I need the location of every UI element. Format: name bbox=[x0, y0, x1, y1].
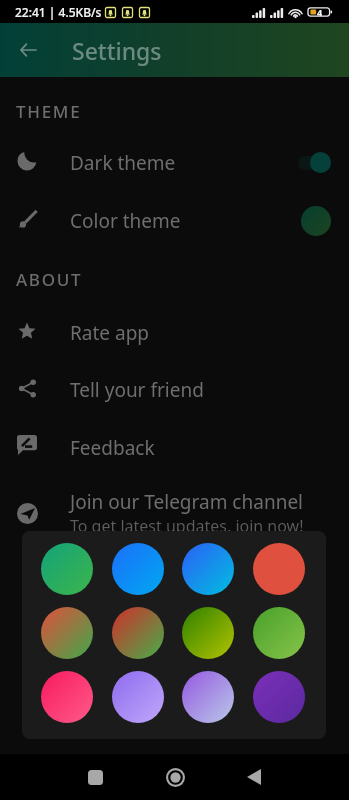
button[interactable]: Tell your friend bbox=[0, 361, 349, 419]
staticText: To get latest updates, join now! bbox=[70, 515, 304, 537]
button[interactable]: Dark theme bbox=[0, 134, 349, 192]
staticText: Dark theme bbox=[70, 150, 176, 176]
button[interactable]: Recents bbox=[75, 757, 115, 797]
button[interactable]: Color 4 bbox=[253, 543, 305, 595]
staticText: 4 bbox=[317, 6, 323, 18]
button[interactable]: Color theme bbox=[0, 192, 349, 250]
staticText: Tell your friend bbox=[70, 377, 204, 403]
button[interactable]: Color 5 bbox=[41, 607, 93, 659]
button[interactable]: Feedback bbox=[0, 419, 349, 477]
button[interactable]: Color 10 bbox=[112, 671, 164, 723]
staticText: Join our Telegram channel bbox=[70, 489, 303, 515]
staticText: Color theme bbox=[70, 208, 181, 234]
button[interactable]: Dark theme toggle bbox=[298, 153, 331, 174]
button[interactable]: Color 8 bbox=[253, 607, 305, 659]
staticText: Settings bbox=[72, 35, 162, 66]
staticText: ABOUT bbox=[16, 268, 83, 291]
staticText: Feedback bbox=[70, 435, 155, 461]
button[interactable]: Color 9 bbox=[41, 671, 93, 723]
button[interactable]: Back bbox=[234, 757, 274, 797]
button[interactable]: Color 11 bbox=[182, 671, 234, 723]
button[interactable]: Join our Telegram channel bbox=[0, 484, 349, 542]
staticText: THEME bbox=[16, 100, 82, 123]
button[interactable]: Color 12 bbox=[253, 671, 305, 723]
button[interactable]: Pick color bbox=[301, 206, 331, 236]
button[interactable]: Color 3 bbox=[182, 543, 234, 595]
button[interactable]: Color 1 bbox=[41, 543, 93, 595]
button[interactable]: Color 7 bbox=[182, 607, 234, 659]
staticText: 22:41 | 4.5KB/s bbox=[15, 4, 102, 20]
staticText: Rate app bbox=[70, 320, 150, 346]
button[interactable]: Rate app bbox=[0, 304, 349, 362]
button[interactable]: Color 6 bbox=[112, 607, 164, 659]
button[interactable]: Color 2 bbox=[112, 543, 164, 595]
button[interactable]: Back bbox=[5, 27, 51, 73]
button[interactable]: Home bbox=[155, 757, 195, 797]
